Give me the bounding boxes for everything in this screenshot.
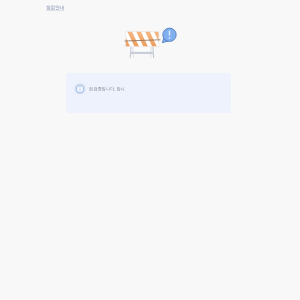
staticText: 점검중입니다, 잠시 xyxy=(89,86,125,92)
button[interactable]: 점검안내 xyxy=(45,4,66,12)
staticText: 점검안내 xyxy=(46,5,65,11)
button[interactable]: 점검중입니다, 잠시 xyxy=(66,73,231,113)
